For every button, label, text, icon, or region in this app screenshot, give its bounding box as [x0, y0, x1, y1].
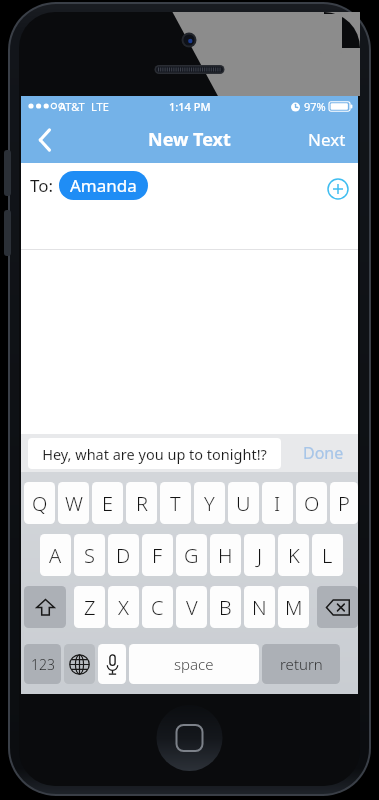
staticText: R	[136, 490, 148, 517]
button[interactable]: Amanda	[59, 171, 148, 200]
button[interactable]: T	[160, 482, 191, 524]
button[interactable]: V	[176, 586, 207, 628]
staticText: K	[288, 542, 300, 569]
button[interactable]: H	[210, 534, 241, 576]
staticText: Z	[84, 594, 96, 621]
staticText: Q	[32, 490, 48, 517]
button[interactable]: N	[244, 586, 275, 628]
button[interactable]: R	[126, 482, 157, 524]
button[interactable]: B	[210, 586, 241, 628]
staticText: G	[184, 542, 199, 569]
button[interactable]: D	[108, 534, 139, 576]
button[interactable]: E	[92, 482, 123, 524]
staticText: F	[152, 542, 163, 569]
button[interactable]: W	[58, 482, 89, 524]
button[interactable]: P	[330, 482, 358, 524]
staticText: Next	[308, 128, 346, 151]
staticText: return	[280, 654, 323, 674]
button[interactable]: space	[129, 644, 259, 684]
staticText: 123	[31, 655, 55, 674]
button[interactable]: Add contact	[318, 169, 358, 209]
button[interactable]: F	[142, 534, 173, 576]
button[interactable]: S	[74, 534, 105, 576]
button[interactable]: Back	[21, 116, 69, 163]
staticText: 97%	[304, 99, 326, 114]
staticText: U	[236, 490, 251, 517]
staticText: New Text	[148, 127, 231, 152]
button[interactable]: return	[262, 644, 340, 684]
staticText: E	[102, 490, 114, 517]
staticText: AT&T	[59, 99, 85, 114]
button[interactable]: U	[228, 482, 259, 524]
staticText: LTE	[91, 99, 109, 114]
staticText: To:	[30, 174, 54, 197]
button[interactable]: Next	[296, 116, 358, 163]
button[interactable]: Shift	[24, 586, 66, 628]
staticText: C	[151, 594, 164, 621]
staticText: S	[84, 542, 95, 569]
button[interactable]: Q	[24, 482, 55, 524]
staticText: Hey, what are you up to tonight!?	[42, 444, 267, 464]
staticText: W	[65, 490, 83, 517]
button[interactable]: Delete	[317, 586, 358, 628]
button[interactable]: Hey, what are you up to tonight!?	[28, 438, 281, 469]
staticText: L	[322, 542, 333, 569]
button[interactable]: G	[176, 534, 207, 576]
button[interactable]: Change keyboard	[64, 644, 95, 684]
staticText: Y	[204, 490, 215, 517]
staticText: V	[186, 594, 198, 621]
staticText: space	[174, 654, 214, 674]
button[interactable]: J	[244, 534, 275, 576]
button[interactable]: A	[40, 534, 71, 576]
staticText: T	[170, 490, 181, 517]
staticText: N	[252, 594, 267, 621]
staticText: D	[116, 542, 131, 569]
button[interactable]: K	[278, 534, 309, 576]
staticText: A	[49, 542, 62, 569]
button[interactable]: 123	[24, 644, 61, 684]
staticText: 1:14 PM	[169, 99, 211, 114]
staticText: B	[219, 594, 232, 621]
staticText: O	[304, 490, 320, 517]
button[interactable]: Done	[289, 434, 358, 472]
button[interactable]: X	[108, 586, 139, 628]
button[interactable]: Dictate	[98, 644, 126, 684]
staticText: I	[274, 490, 281, 517]
staticText: M	[285, 594, 303, 621]
button[interactable]: M	[278, 586, 309, 628]
button[interactable]: Z	[74, 586, 105, 628]
button[interactable]: L	[312, 534, 343, 576]
staticText: J	[257, 542, 263, 569]
button[interactable]: O	[296, 482, 327, 524]
button[interactable]: C	[142, 586, 173, 628]
staticText: H	[218, 542, 233, 569]
staticText: Done	[303, 442, 344, 464]
staticText: X	[118, 594, 129, 621]
button[interactable]: Y	[194, 482, 225, 524]
staticText: P	[338, 490, 350, 517]
staticText: Amanda	[70, 174, 137, 197]
button[interactable]: I	[262, 482, 293, 524]
